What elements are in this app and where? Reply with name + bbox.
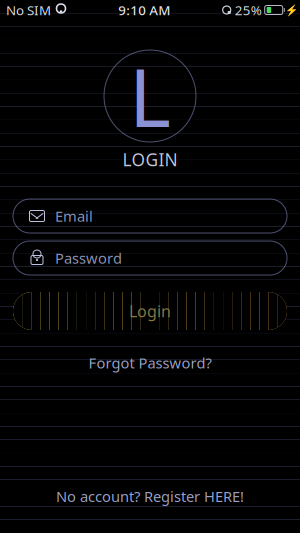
staticText: No SIM — [6, 1, 51, 19]
button[interactable]: Login — [13, 292, 287, 330]
staticText: 9:10 AM — [118, 1, 170, 19]
staticText: LOGIN — [122, 148, 177, 171]
button[interactable]: Forgot Password? — [78, 349, 221, 376]
button[interactable]: No account? Register HERE! — [44, 480, 256, 512]
staticText: Login — [129, 300, 171, 322]
staticText: Password — [55, 248, 122, 268]
button[interactable]: Password — [13, 241, 287, 275]
button[interactable]: Email — [13, 199, 287, 233]
staticText: No account? Register HERE! — [56, 486, 244, 506]
staticText: L — [129, 43, 171, 149]
staticText: Email — [55, 206, 93, 226]
staticText: 25% — [235, 1, 262, 19]
staticText: Forgot Password? — [88, 353, 211, 372]
staticText: ⚡ — [284, 4, 297, 16]
